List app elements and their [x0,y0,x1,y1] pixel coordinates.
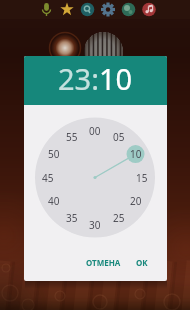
staticText: 20 [130,194,142,208]
staticText: 55 [66,130,78,144]
staticText: 05 [113,130,125,144]
staticText: 40 [48,194,60,208]
staticText: ОТМЕНА [86,257,121,268]
staticText: 30 [89,218,101,232]
staticText: 35 [66,211,78,225]
staticText: 15 [136,171,148,185]
staticText: 00 [89,124,101,138]
button[interactable]: ОТМЕНА [80,251,126,273]
staticText: 50 [48,147,60,161]
staticText: 25 [113,211,125,225]
button[interactable]: OK [127,251,157,273]
staticText: OK [136,257,148,268]
staticText: 10 [130,147,142,161]
staticText: 23:10 [58,59,133,98]
staticText: 45 [42,171,54,185]
